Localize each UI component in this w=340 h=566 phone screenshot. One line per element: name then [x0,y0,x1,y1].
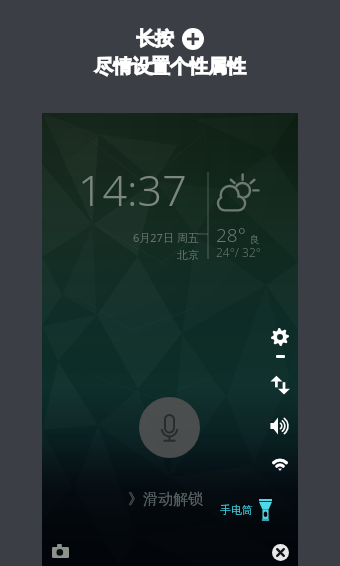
button[interactable]: Settings [267,324,293,350]
button[interactable]: Volume [267,413,293,439]
staticText: 北京 [177,248,199,262]
button[interactable]: Close [272,544,289,561]
staticText: 》滑动解锁 [128,490,203,509]
staticText: 长按 [136,27,174,51]
button[interactable]: Mobile data [267,372,293,398]
button[interactable]: Wi-Fi [267,455,293,481]
staticText: 6月27日 周五 [133,230,199,245]
staticText: 14:37 [78,160,187,219]
button[interactable]: Voice assistant [139,397,200,458]
staticText: 24°/ 32° [216,244,261,260]
button[interactable]: 手电筒 [220,499,272,520]
staticText: 手电筒 [220,503,253,517]
staticText: 28° [216,222,246,248]
staticText: 尽情设置个性属性 [94,55,246,79]
button[interactable]: 》滑动解锁 [128,490,203,509]
button[interactable]: Camera [47,538,73,564]
staticText: 良 [250,233,260,246]
